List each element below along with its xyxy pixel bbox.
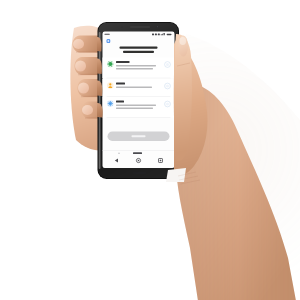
button[interactable]: Hand holding a phone showing an option s… — [0, 0, 300, 300]
